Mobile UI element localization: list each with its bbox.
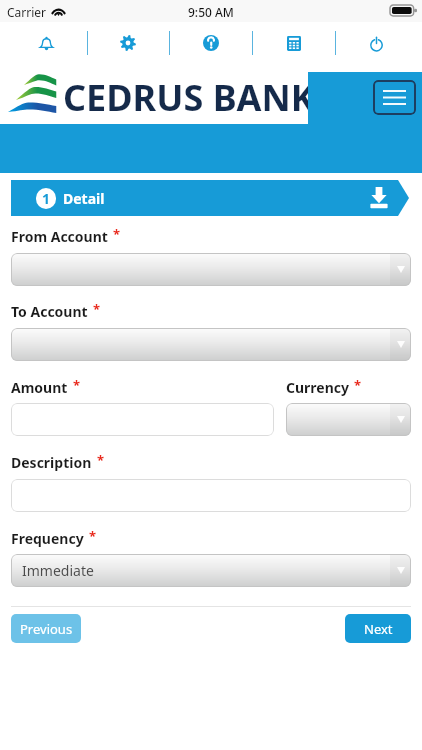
staticText: * bbox=[73, 376, 81, 394]
button[interactable] bbox=[11, 253, 411, 286]
staticText: 9:50 AM bbox=[188, 4, 234, 20]
staticText: * bbox=[89, 527, 97, 545]
staticText: Previous bbox=[20, 620, 73, 638]
button[interactable]: Power off bbox=[355, 22, 397, 64]
staticText: Currency bbox=[286, 378, 349, 397]
staticText: Description bbox=[11, 453, 92, 472]
staticText: CEDRUS BANK bbox=[63, 73, 308, 122]
button[interactable] bbox=[11, 328, 411, 361]
button[interactable] bbox=[286, 403, 411, 436]
button[interactable]: Notifications bbox=[25, 22, 67, 64]
button[interactable]: Download bbox=[367, 186, 391, 210]
staticText: Next bbox=[364, 620, 393, 638]
staticText: From Account bbox=[11, 227, 108, 246]
button[interactable]: Help bbox=[190, 22, 232, 64]
staticText: * bbox=[113, 225, 121, 243]
button[interactable] bbox=[11, 403, 274, 436]
staticText: Detail bbox=[63, 189, 105, 208]
staticText: Amount bbox=[11, 378, 68, 397]
staticText: * bbox=[97, 451, 105, 469]
button[interactable]: Previous bbox=[11, 614, 81, 643]
staticText: * bbox=[93, 300, 101, 318]
staticText: Immediate bbox=[22, 561, 94, 580]
staticText: * bbox=[354, 376, 362, 394]
button[interactable]: Next bbox=[345, 614, 411, 643]
button[interactable]: Menu bbox=[373, 80, 416, 115]
button[interactable]: Calculator bbox=[273, 22, 315, 64]
button[interactable] bbox=[11, 479, 411, 512]
staticText: Carrier bbox=[7, 4, 47, 20]
button[interactable]: Settings bbox=[107, 22, 149, 64]
button[interactable]: Immediate bbox=[11, 554, 411, 587]
staticText: 1 bbox=[42, 189, 51, 208]
staticText: Frequency bbox=[11, 529, 84, 548]
staticText: To Account bbox=[11, 302, 88, 321]
